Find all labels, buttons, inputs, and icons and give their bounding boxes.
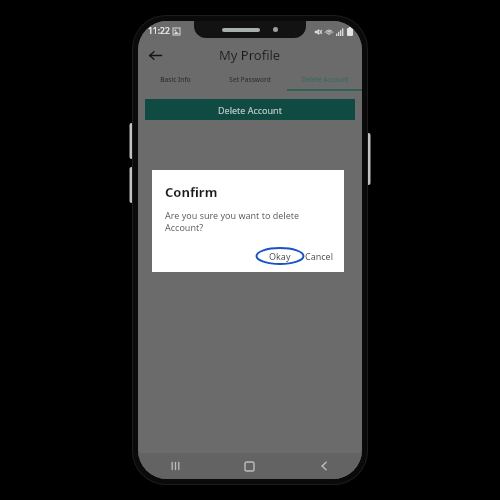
staticText: 11:22: [148, 25, 170, 37]
staticText: Are you sure you want to delete Account?: [165, 209, 300, 234]
button[interactable]: Okay: [255, 246, 305, 266]
button[interactable]: Delete Account: [287, 69, 362, 89]
button[interactable]: Delete Account: [145, 99, 355, 120]
staticText: My Profile: [219, 46, 281, 64]
button[interactable]: Set Password: [212, 69, 287, 89]
button[interactable]: Back: [144, 44, 166, 66]
button[interactable]: Back: [287, 453, 362, 479]
button[interactable]: Recent apps: [138, 453, 212, 479]
button[interactable]: Basic Info: [138, 69, 212, 89]
button[interactable]: Home: [212, 453, 287, 479]
staticText: Delete Account: [301, 75, 349, 84]
staticText: Confirm: [165, 183, 218, 201]
staticText: Delete Account: [218, 104, 282, 116]
staticText: Okay: [269, 250, 291, 262]
staticText: Basic Info: [160, 75, 191, 84]
staticText: Cancel: [305, 250, 334, 262]
button[interactable]: Cancel: [305, 246, 334, 266]
staticText: Set Password: [229, 75, 271, 84]
